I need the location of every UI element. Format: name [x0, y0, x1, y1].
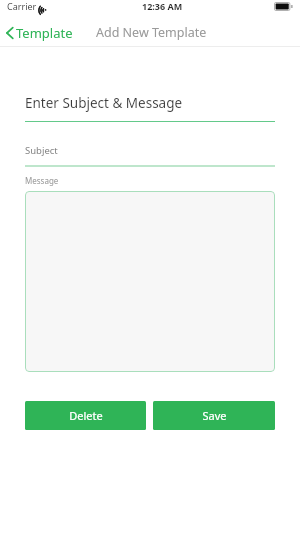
button[interactable]: Subject	[25, 144, 58, 157]
staticText: Save	[202, 408, 227, 423]
staticText: Message	[25, 175, 59, 186]
button[interactable]: Template	[0, 21, 81, 45]
button[interactable]	[25, 191, 275, 372]
button[interactable]: Save	[153, 401, 275, 430]
staticText: Add New Template	[96, 24, 207, 41]
staticText: 12:36 AM	[142, 0, 183, 12]
other: Wi-Fi	[40, 2, 51, 11]
other: Battery	[274, 2, 293, 11]
staticText: Template	[16, 24, 73, 42]
button[interactable]: Delete	[25, 401, 146, 430]
staticText: Carrier	[7, 0, 37, 12]
staticText: Enter Subject & Message	[25, 94, 183, 112]
staticText: Delete	[69, 408, 103, 423]
